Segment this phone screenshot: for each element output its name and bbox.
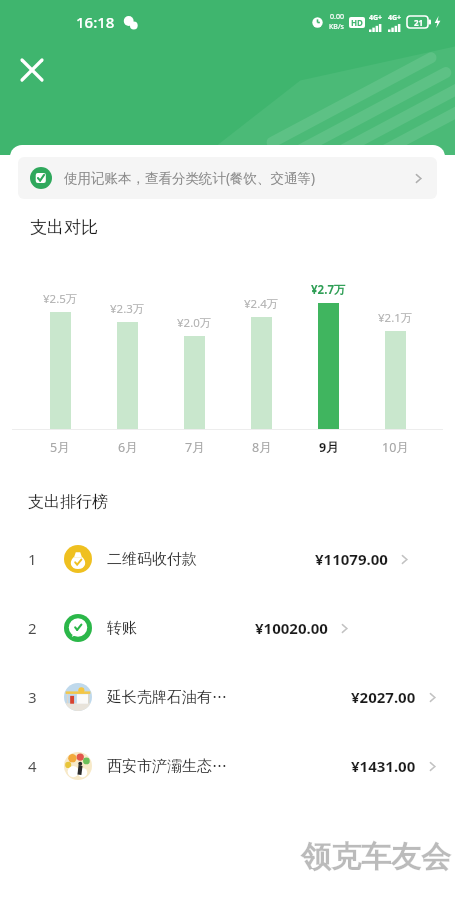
staticText: ¥11079.00	[315, 549, 388, 569]
button[interactable]: 2	[0, 607, 455, 649]
staticText: 领克车友会	[301, 838, 451, 876]
staticText: ¥10020.00	[255, 618, 328, 638]
staticText: 转账	[107, 619, 137, 638]
staticText: 3	[28, 687, 37, 707]
staticText: 7月	[185, 439, 205, 456]
staticText: ¥2.3万	[110, 301, 145, 317]
staticText: 6月	[118, 439, 138, 456]
staticText: 4G+	[388, 13, 402, 23]
staticText: ¥2.5万	[43, 291, 78, 307]
button[interactable]: 4	[0, 745, 455, 787]
staticText: 16:18	[76, 12, 115, 32]
staticText: 支出排行榜	[28, 492, 108, 512]
staticText: 0.00	[330, 12, 344, 22]
staticText: 21	[414, 17, 424, 28]
staticText: ¥2.1万	[378, 310, 413, 326]
button[interactable]: 3	[0, 676, 455, 718]
button[interactable]: Close	[8, 46, 56, 94]
staticText: 延长壳牌石油有限公司	[107, 688, 229, 707]
staticText: 支出对比	[30, 217, 98, 238]
staticText: ¥1431.00	[351, 756, 416, 776]
staticText: HD	[351, 17, 363, 28]
staticText: ¥2.7万	[311, 282, 346, 298]
staticText: 5月	[50, 439, 70, 456]
staticText: 2	[28, 618, 37, 638]
staticText: 4	[28, 756, 37, 776]
staticText: 1	[28, 549, 37, 569]
staticText: 4G+	[369, 13, 383, 23]
staticText: ¥2.4万	[244, 296, 279, 312]
staticText: KB/s	[329, 22, 344, 32]
staticText: ¥2.0万	[177, 315, 212, 331]
staticText: ¥2027.00	[351, 687, 416, 707]
staticText: 10月	[382, 439, 409, 456]
staticText: 西安市浐灞生态区贝克母婴…	[107, 757, 229, 776]
button[interactable]: 1	[0, 538, 455, 580]
staticText: 9月	[319, 439, 339, 456]
staticText: 8月	[252, 439, 272, 456]
staticText: 使用记账本，查看分类统计(餐饮、交通等)	[64, 169, 406, 187]
staticText: 二维码收付款	[107, 550, 197, 569]
button[interactable]: 使用记账本，查看分类统计(餐饮、交通等)	[18, 157, 437, 199]
